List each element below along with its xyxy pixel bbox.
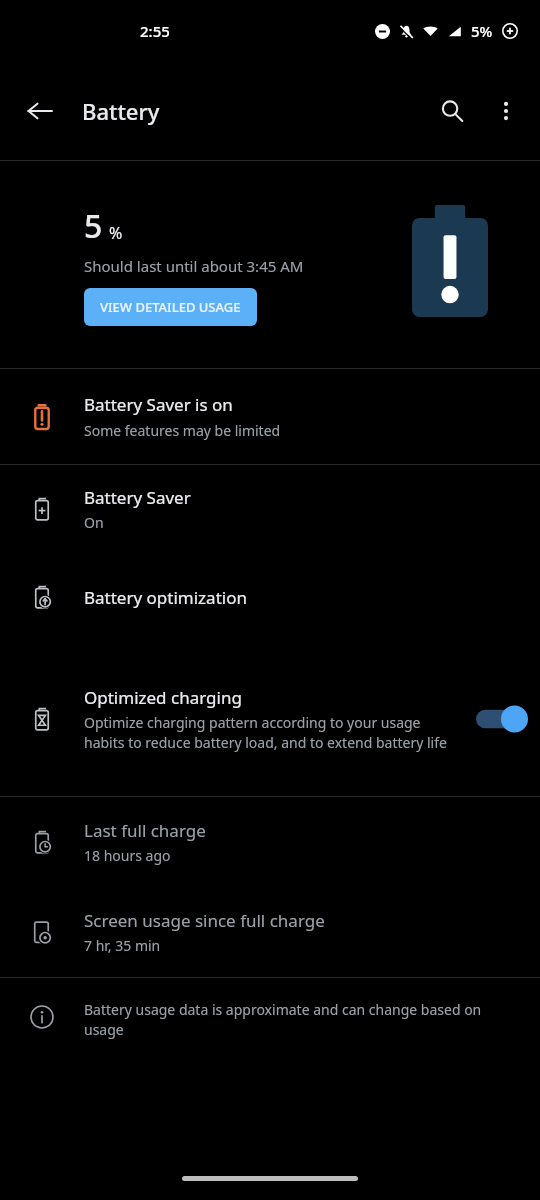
staticText: Battery optimization bbox=[84, 586, 247, 609]
staticText: 18 hours ago bbox=[84, 846, 171, 865]
button[interactable]: Battery Saver is on bbox=[0, 369, 540, 464]
staticText: 7 hr, 35 min bbox=[84, 936, 161, 955]
staticText: Battery usage data is approximate and ca… bbox=[84, 1000, 492, 1039]
staticText: Screen usage since full charge bbox=[84, 909, 325, 932]
button[interactable]: Optimized charging toggle bbox=[464, 689, 540, 749]
staticText: 2:55 bbox=[140, 21, 170, 41]
staticText: Optimize charging pattern according to y… bbox=[84, 713, 452, 752]
button[interactable]: Screen usage since full charge bbox=[0, 887, 540, 977]
staticText: Battery Saver is on bbox=[84, 393, 233, 416]
staticText: Should last until about 3:45 AM bbox=[84, 256, 304, 276]
staticText: Battery Saver bbox=[84, 486, 191, 509]
staticText: 5% bbox=[471, 21, 493, 41]
staticText: Battery bbox=[82, 96, 160, 126]
staticText: Last full charge bbox=[84, 819, 206, 842]
button[interactable]: Back bbox=[12, 83, 68, 139]
staticText: VIEW DETAILED USAGE bbox=[100, 298, 241, 316]
staticText: Optimized charging bbox=[84, 686, 242, 709]
staticText: Some features may be limited bbox=[84, 421, 281, 440]
button[interactable]: More options bbox=[480, 85, 532, 137]
staticText: 5 bbox=[84, 204, 103, 248]
button[interactable]: Battery optimization bbox=[0, 553, 540, 641]
button[interactable]: VIEW DETAILED USAGE bbox=[84, 288, 257, 326]
button[interactable]: Optimized charging bbox=[0, 641, 540, 796]
button[interactable]: Last full charge bbox=[0, 797, 540, 887]
button[interactable]: Battery Saver bbox=[0, 465, 540, 553]
staticText: On bbox=[84, 513, 104, 532]
button[interactable]: Search bbox=[424, 83, 480, 139]
staticText: % bbox=[109, 222, 123, 244]
